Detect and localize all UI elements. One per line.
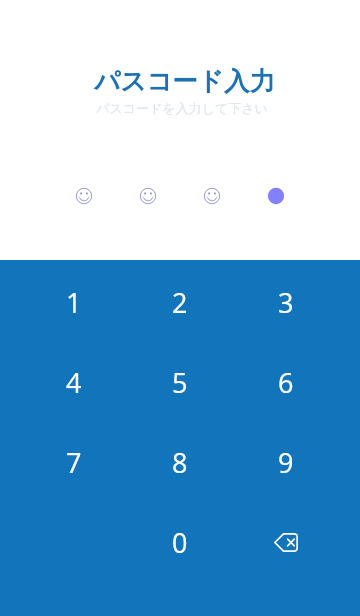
staticText: パスコード入力 [94, 65, 275, 97]
button[interactable]: 7 [21, 422, 127, 502]
staticText: パスコードを入力して下さい [96, 100, 268, 116]
staticText: 8 [172, 444, 188, 481]
staticText: 1 [66, 284, 82, 321]
staticText: 5 [172, 364, 188, 401]
other: Passcode digit empty [200, 184, 224, 208]
button[interactable]: 2 [127, 262, 233, 342]
button[interactable]: 6 [233, 342, 339, 422]
other: Passcode digit empty [136, 184, 160, 208]
staticText: 9 [278, 444, 294, 481]
button[interactable]: 3 [233, 262, 339, 342]
staticText: 6 [278, 364, 294, 401]
staticText: 0 [172, 524, 188, 561]
button[interactable]: 9 [233, 422, 339, 502]
button[interactable]: 1 [21, 262, 127, 342]
button[interactable]: 5 [127, 342, 233, 422]
button[interactable]: Delete [233, 502, 339, 582]
staticText: 3 [278, 284, 294, 321]
staticText: 4 [66, 364, 82, 401]
button[interactable]: 0 [127, 502, 233, 582]
staticText: 2 [172, 284, 188, 321]
other: Passcode digit empty [72, 184, 96, 208]
staticText: 7 [66, 444, 82, 481]
other: Passcode digit entered [264, 184, 288, 208]
button[interactable]: 8 [127, 422, 233, 502]
button[interactable]: 4 [21, 342, 127, 422]
